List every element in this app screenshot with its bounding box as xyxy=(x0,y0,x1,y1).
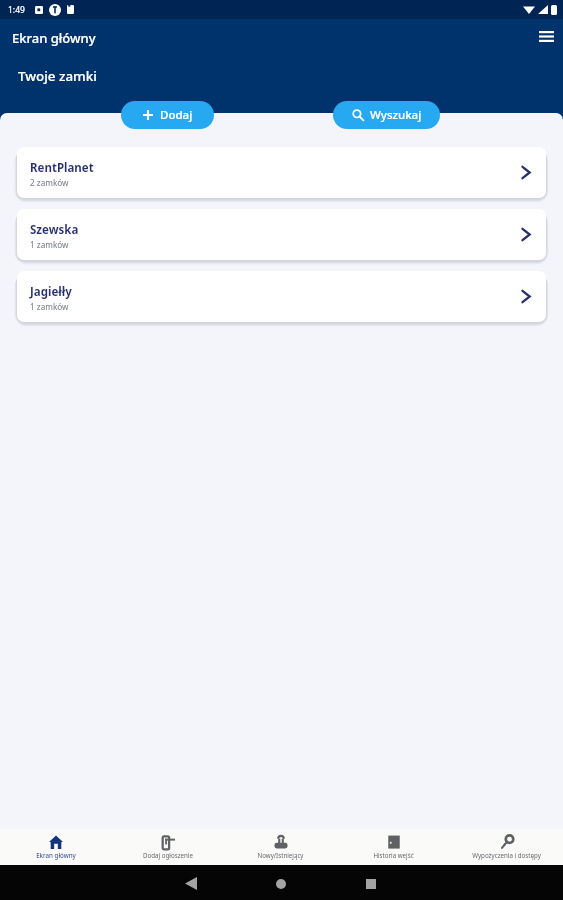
staticText: Ekran główny xyxy=(36,851,76,859)
button[interactable]: Menu xyxy=(533,23,559,49)
staticText: Wyszukaj xyxy=(370,107,422,123)
button[interactable]: Nowy/Istniejący xyxy=(224,829,337,865)
button[interactable]: Jagiełły xyxy=(17,271,546,322)
staticText: Nowy/Istniejący xyxy=(257,851,304,859)
button[interactable]: Ekran główny xyxy=(0,829,112,865)
button[interactable]: Home xyxy=(276,879,286,889)
button[interactable]: Back xyxy=(185,877,197,890)
button[interactable]: Wypożyczenia i dostępy xyxy=(450,829,563,865)
staticText: Dodaj ogłoszenie xyxy=(143,851,193,859)
staticText: Ekran główny xyxy=(12,29,96,47)
button[interactable]: Historia wejść xyxy=(337,829,450,865)
staticText: Dodaj xyxy=(160,107,193,123)
staticText: RentPlanet xyxy=(30,160,94,176)
button[interactable]: Szewska xyxy=(17,209,546,260)
staticText: Jagiełły xyxy=(30,284,72,300)
staticText: 1 zamków xyxy=(30,301,69,312)
button[interactable]: RentPlanet xyxy=(17,147,546,198)
staticText: 2 zamków xyxy=(30,177,69,188)
button[interactable]: Dodaj xyxy=(121,101,214,129)
staticText: Szewska xyxy=(30,222,79,238)
staticText: Historia wejść xyxy=(373,851,414,859)
staticText: Twoje zamki xyxy=(18,67,97,85)
button[interactable]: Dodaj ogłoszenie xyxy=(112,829,224,865)
button[interactable]: Wyszukaj xyxy=(333,101,440,129)
staticText: Wypożyczenia i dostępy xyxy=(472,851,541,859)
staticText: 1 zamków xyxy=(30,239,69,250)
staticText: 1:49 xyxy=(8,4,25,16)
